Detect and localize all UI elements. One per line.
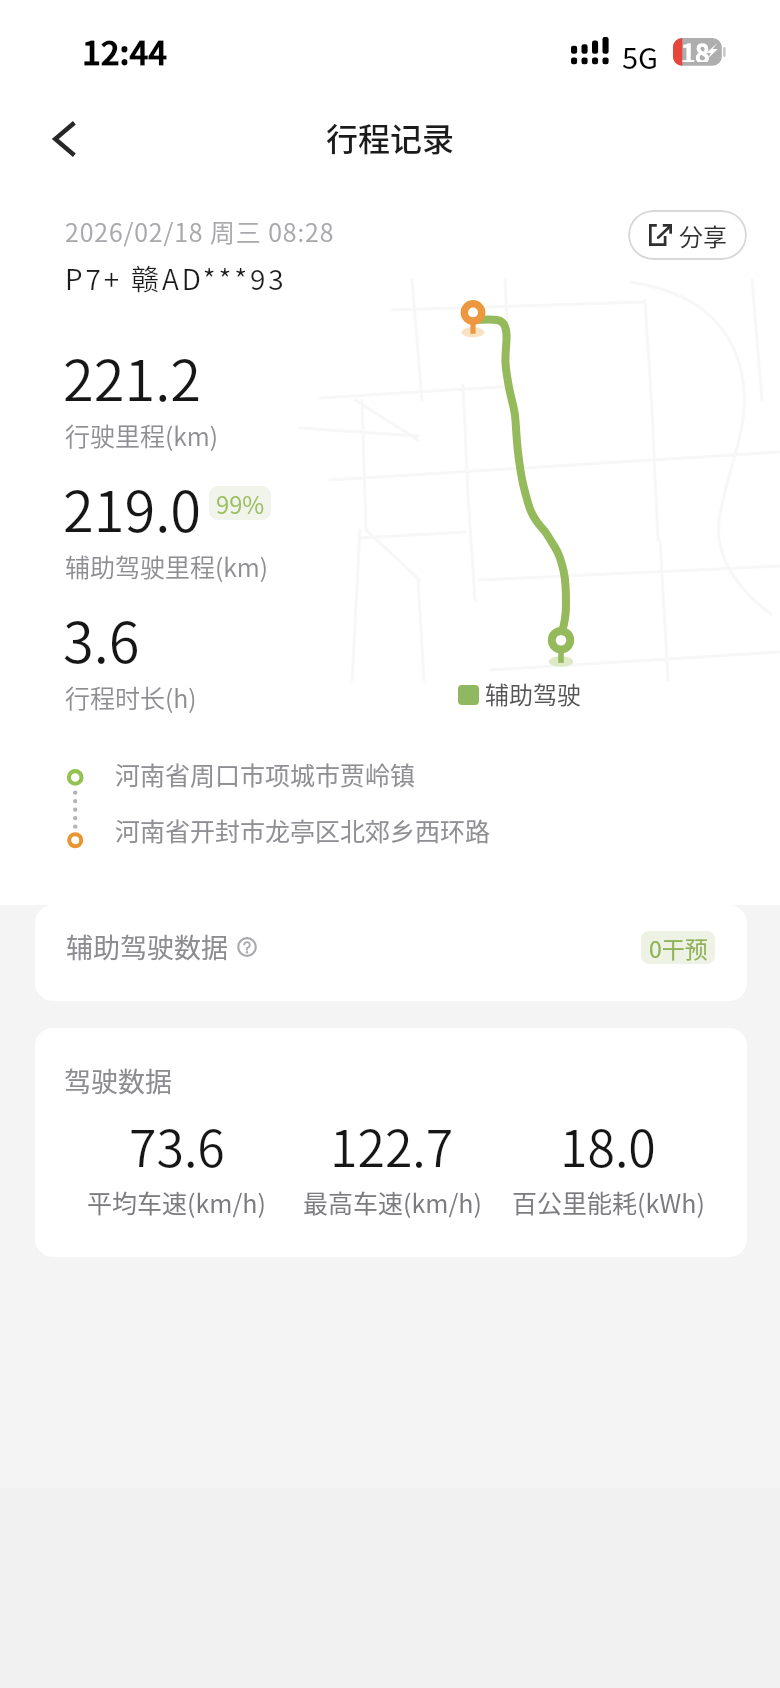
staticText: 河南省开封市龙亭区北郊乡西环路 <box>115 812 491 848</box>
staticText: 2026/02/18 周三 08:28 <box>65 213 335 249</box>
staticText: 行程时长(h) <box>65 679 197 715</box>
staticText: 最高车速(km/h) <box>303 1184 482 1220</box>
staticText: 平均车速(km/h) <box>87 1184 266 1220</box>
staticText: 行程记录 <box>326 114 455 160</box>
staticText: 73.6 <box>129 1109 225 1181</box>
staticText: 3.6 <box>63 598 140 679</box>
staticText: 河南省周口市项城市贾岭镇 <box>115 756 416 792</box>
staticText: 辅助驾驶数据 <box>66 927 228 966</box>
staticText: 122.7 <box>330 1109 454 1181</box>
staticText: 分享 <box>679 218 727 253</box>
button[interactable]: Back <box>21 97 105 181</box>
staticText: 18 <box>681 34 710 62</box>
staticText: 219.0 <box>63 467 202 548</box>
button[interactable]: 分享 <box>628 210 747 260</box>
staticText: 辅助驾驶 <box>485 676 581 711</box>
staticText: 驾驶数据 <box>64 1061 172 1100</box>
button[interactable]: 辅助驾驶数据 <box>35 905 747 1001</box>
staticText: 221.2 <box>63 336 202 417</box>
staticText: 12:44 <box>82 27 168 75</box>
staticText: 5G <box>622 35 659 77</box>
staticText: P7+ 赣AD***93 <box>65 258 287 299</box>
staticText: 18.0 <box>560 1109 656 1181</box>
staticText: 辅助驾驶里程(km) <box>65 548 269 584</box>
staticText: 0干预 <box>649 931 708 964</box>
staticText: 99% <box>216 486 265 520</box>
staticText: 行驶里程(km) <box>65 417 219 453</box>
staticText: 百公里能耗(kWh) <box>512 1184 705 1220</box>
